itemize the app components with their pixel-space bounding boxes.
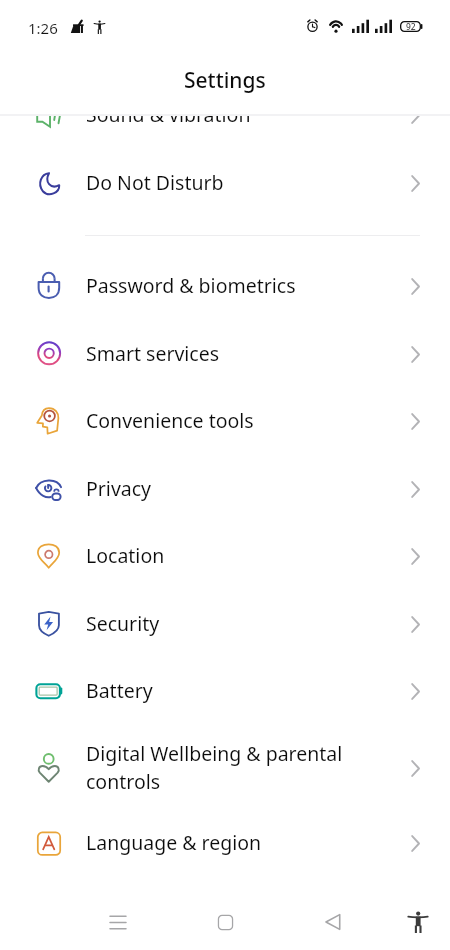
button[interactable]: Language & region (0, 808, 450, 876)
staticText: Language & region (86, 829, 262, 856)
button[interactable]: Convenience tools (0, 386, 450, 454)
button[interactable]: Do Not Disturb (0, 148, 450, 216)
staticText: Security (86, 610, 160, 637)
button[interactable]: Smart services (0, 319, 450, 387)
button[interactable]: Battery (0, 656, 450, 724)
button[interactable]: Security (0, 589, 450, 657)
staticText: Privacy (86, 475, 152, 502)
staticText: Convenience tools (86, 407, 254, 434)
staticText: 92 (406, 21, 416, 32)
button[interactable]: Home (205, 902, 245, 942)
button[interactable]: Password & biometrics (0, 251, 450, 319)
button[interactable]: Back (313, 902, 353, 942)
staticText: Password & biometrics (86, 272, 296, 299)
button[interactable]: Privacy (0, 454, 450, 522)
button[interactable]: Recent apps (98, 902, 138, 942)
button[interactable]: Sound & vibration (0, 115, 450, 148)
staticText: Do Not Disturb (86, 169, 224, 196)
staticText: Location (86, 542, 165, 569)
staticText: 1:26 (28, 18, 58, 38)
staticText: Smart services (86, 340, 220, 367)
staticText: Battery (86, 677, 153, 704)
button[interactable]: Location (0, 521, 450, 589)
button[interactable]: Accessibility (398, 902, 438, 942)
staticText: Sound & vibration (86, 115, 251, 128)
staticText: Settings (184, 66, 266, 95)
button[interactable]: Digital Wellbeing & parental controls (0, 726, 450, 809)
staticText: Digital Wellbeing & parental controls (86, 740, 343, 795)
